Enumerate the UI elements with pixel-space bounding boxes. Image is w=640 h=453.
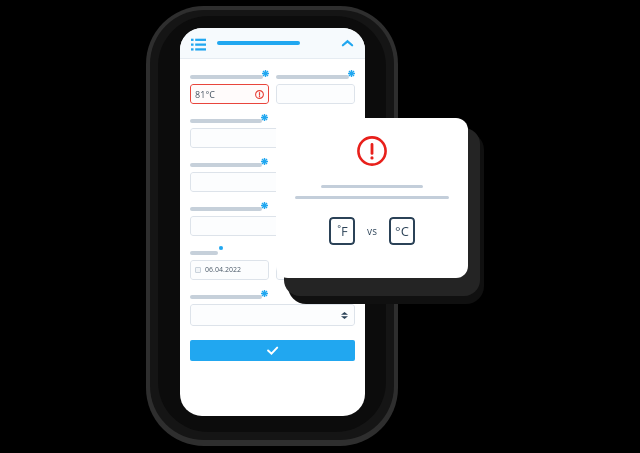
button[interactable]: Submit: [190, 340, 355, 361]
staticText: 06.04.2022: [205, 265, 241, 275]
staticText: vs: [367, 224, 377, 238]
button[interactable]: Collapse: [338, 34, 356, 52]
button[interactable]: Input field: [190, 172, 355, 192]
button[interactable]: Menu: [189, 34, 207, 52]
button[interactable]: Input field: [190, 216, 355, 236]
staticText: 81°C: [195, 88, 215, 100]
button[interactable]: [190, 304, 355, 326]
button[interactable]: Input field: [276, 84, 355, 104]
button[interactable]: Input field: [190, 128, 355, 148]
button[interactable]: °C: [389, 217, 415, 245]
button[interactable]: 06.04.2022: [190, 260, 269, 280]
button[interactable]: 81°C: [190, 84, 269, 104]
staticText: ˚F: [337, 222, 348, 240]
button[interactable]: ˚F: [329, 217, 355, 245]
staticText: °C: [395, 222, 409, 240]
button[interactable]: 08.05.2022: [276, 260, 355, 280]
